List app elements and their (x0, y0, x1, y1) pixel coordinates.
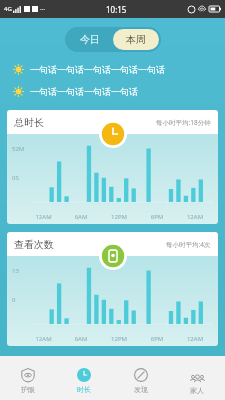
staticText: 一句话一句话一句话一句话一句话 (30, 64, 165, 75)
staticText: 每小时平均:18分钟 (156, 118, 211, 127)
staticText: 本周 (126, 33, 146, 46)
staticText: 13 (12, 267, 19, 275)
button[interactable]: 时长 (56, 362, 112, 400)
staticText: 6AM (62, 213, 100, 221)
staticText: 12PM (100, 213, 138, 221)
button[interactable]: 今日 (67, 29, 113, 50)
button[interactable]: 护眼 (0, 362, 56, 400)
staticText: 6AM (62, 335, 100, 343)
staticText: 0 (12, 296, 16, 304)
staticText: 家人 (190, 386, 204, 395)
staticText: 时长 (77, 385, 91, 394)
staticText: 发现 (134, 385, 148, 394)
staticText: 今日 (80, 33, 100, 46)
button[interactable]: 本周 (113, 29, 159, 50)
staticText: 6PM (138, 335, 176, 343)
button[interactable]: 家人 (169, 362, 225, 400)
staticText: 12AM (176, 213, 214, 221)
staticText: 6PM (138, 213, 176, 221)
staticText: 护眼 (21, 385, 35, 394)
staticText: 12AM (176, 335, 214, 343)
staticText: 12AM (25, 335, 62, 343)
staticText: 总时长 (14, 116, 44, 129)
staticText: 52M (12, 145, 25, 153)
staticText: 每小时平均:4次 (166, 240, 211, 249)
staticText: 12AM (25, 213, 62, 221)
staticText: 10:15 (106, 4, 127, 15)
staticText: 0S (12, 174, 19, 182)
button[interactable]: 查看次数 (7, 232, 218, 346)
button[interactable]: 总时长 (7, 110, 218, 224)
staticText: 一句话一句话一句话一句话 (30, 86, 138, 97)
staticText: ··· (40, 5, 45, 13)
staticText: 查看次数 (14, 238, 54, 251)
button[interactable]: 发现 (113, 362, 169, 400)
staticText: 12PM (100, 335, 138, 343)
staticText: 4G (4, 5, 12, 13)
